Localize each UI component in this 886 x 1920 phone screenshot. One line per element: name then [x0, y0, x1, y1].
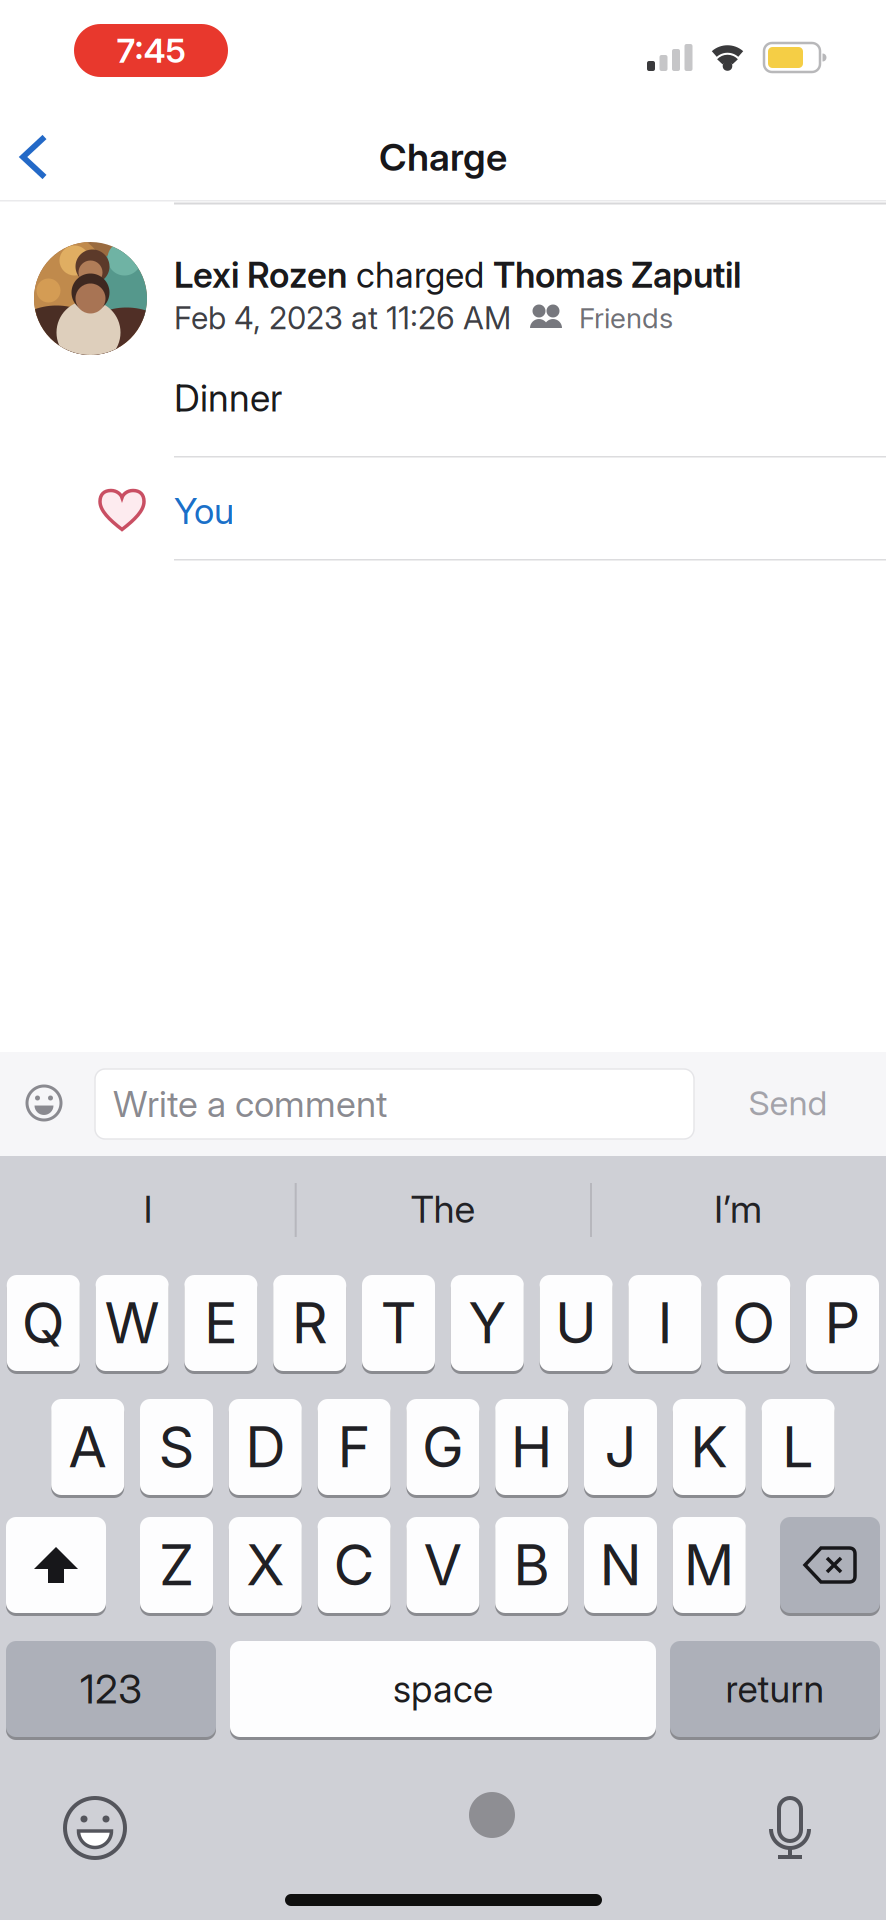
- staticText: Write a comment: [113, 1082, 387, 1126]
- staticText: V: [423, 1531, 462, 1599]
- button[interactable]: M: [673, 1515, 746, 1614]
- staticText: Thomas Zaputil: [493, 254, 741, 296]
- staticText: P: [824, 1289, 860, 1357]
- button[interactable]: D: [229, 1397, 302, 1496]
- button[interactable]: I: [8, 1159, 288, 1259]
- button[interactable]: I’m: [598, 1159, 878, 1259]
- button[interactable]: E: [184, 1273, 257, 1372]
- staticText: I’m: [714, 1186, 762, 1232]
- staticText: Q: [22, 1289, 65, 1357]
- staticText: W: [105, 1289, 160, 1357]
- staticText: X: [246, 1531, 284, 1599]
- button[interactable]: P: [806, 1273, 879, 1372]
- button[interactable]: G: [406, 1397, 479, 1496]
- button[interactable]: Z: [140, 1515, 213, 1614]
- staticText: K: [690, 1413, 728, 1481]
- staticText: return: [725, 1667, 824, 1711]
- button[interactable]: Shift: [6, 1515, 106, 1614]
- button[interactable]: O: [717, 1273, 790, 1372]
- staticText: D: [245, 1413, 285, 1481]
- staticText: Dinner: [174, 376, 282, 420]
- button[interactable]: Delete: [780, 1515, 880, 1614]
- staticText: U: [555, 1289, 597, 1357]
- button[interactable]: N: [584, 1515, 657, 1614]
- staticText: O: [732, 1289, 775, 1357]
- button[interactable]: R: [273, 1273, 346, 1372]
- staticText: B: [513, 1531, 550, 1599]
- staticText: F: [338, 1413, 371, 1481]
- staticText: Lexi Rozen: [174, 254, 347, 296]
- staticText: Friends: [579, 301, 673, 335]
- staticText: I: [657, 1289, 672, 1357]
- staticText: T: [380, 1289, 416, 1357]
- staticText: Charge: [379, 134, 507, 180]
- button[interactable]: Back: [13, 127, 69, 186]
- button[interactable]: I: [628, 1273, 701, 1372]
- staticText: H: [511, 1413, 553, 1481]
- staticText: Y: [468, 1289, 506, 1357]
- button[interactable]: The: [303, 1159, 583, 1259]
- button[interactable]: Emoji: [16, 1075, 72, 1131]
- staticText: A: [68, 1413, 107, 1481]
- staticText: M: [684, 1531, 735, 1599]
- staticText: space: [393, 1667, 493, 1711]
- button[interactable]: C: [318, 1515, 391, 1614]
- staticText: Send: [748, 1082, 827, 1123]
- staticText: S: [158, 1413, 194, 1481]
- button[interactable]: F: [318, 1397, 391, 1496]
- button[interactable]: Write a comment: [95, 1069, 694, 1139]
- staticText: C: [334, 1531, 375, 1599]
- button[interactable]: return: [670, 1639, 880, 1738]
- button[interactable]: T: [362, 1273, 435, 1372]
- staticText: 7:45: [116, 30, 185, 71]
- staticText: Feb 4, 2023 at 11:26 AM: [174, 299, 511, 337]
- button[interactable]: U: [540, 1273, 613, 1372]
- button[interactable]: L: [762, 1397, 835, 1496]
- button[interactable]: H: [495, 1397, 568, 1496]
- button[interactable]: space: [230, 1639, 656, 1738]
- button[interactable]: Screen recording: [74, 24, 228, 77]
- staticText: E: [204, 1289, 238, 1357]
- staticText: You: [174, 489, 234, 533]
- button[interactable]: Q: [7, 1273, 80, 1372]
- button[interactable]: Dictation: [765, 1793, 815, 1863]
- staticText: G: [422, 1413, 464, 1481]
- staticText: N: [599, 1531, 641, 1599]
- button[interactable]: Y: [451, 1273, 524, 1372]
- button[interactable]: X: [229, 1515, 302, 1614]
- button[interactable]: W: [96, 1273, 169, 1372]
- button[interactable]: You: [174, 485, 234, 537]
- staticText: I: [143, 1186, 152, 1232]
- staticText: J: [604, 1413, 636, 1481]
- button[interactable]: Emoji keyboard: [62, 1795, 128, 1861]
- staticText: The: [410, 1186, 475, 1232]
- button[interactable]: K: [673, 1397, 746, 1496]
- staticText: Z: [159, 1531, 194, 1599]
- button[interactable]: B: [495, 1515, 568, 1614]
- button[interactable]: J: [584, 1397, 657, 1496]
- button[interactable]: V: [406, 1515, 479, 1614]
- staticText: charged: [347, 254, 493, 296]
- staticText: 123: [80, 1665, 142, 1713]
- button[interactable]: A: [51, 1397, 124, 1496]
- button[interactable]: S: [140, 1397, 213, 1496]
- button[interactable]: 123: [6, 1639, 216, 1738]
- button[interactable]: Send: [718, 1068, 858, 1138]
- staticText: R: [292, 1289, 328, 1357]
- staticText: L: [782, 1413, 814, 1481]
